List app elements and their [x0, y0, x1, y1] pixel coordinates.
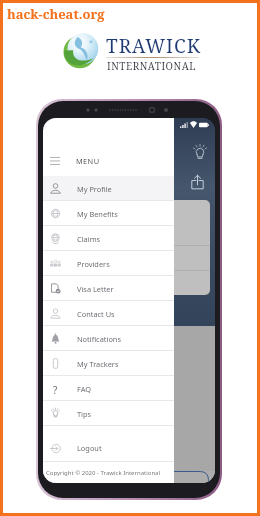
staticText: hack-cheat.org: [7, 5, 105, 23]
staticText: Logout: [77, 443, 102, 453]
button[interactable]: Notifications: [43, 326, 174, 351]
staticText: Claims: [77, 234, 101, 244]
button[interactable]: Contact Us: [43, 301, 174, 326]
button[interactable]: Share: [188, 173, 207, 191]
staticText: Copyright © 2020 - Trawick International: [46, 469, 161, 477]
button[interactable]: My Trackers: [43, 351, 174, 376]
staticText: INTERNATIONAL: [107, 59, 196, 73]
staticText: y KY: [45, 368, 61, 379]
staticText: Providers: [77, 259, 110, 269]
staticText: My Profile: [77, 184, 112, 194]
staticText: Notifications: [77, 334, 121, 344]
staticText: My Trackers: [77, 359, 119, 369]
button[interactable]: NGS: [43, 471, 215, 483]
staticText: .com: [45, 411, 64, 422]
button[interactable]: Logout: [43, 434, 174, 462]
staticText: Tips: [77, 409, 92, 419]
staticText: ?: [53, 383, 58, 394]
button[interactable]: My Profile: [43, 176, 174, 201]
staticText: MENU: [76, 156, 100, 166]
button[interactable]: Visa Letter: [43, 276, 174, 301]
staticText: Visa Letter: [77, 284, 114, 294]
button[interactable]: My Benefits: [43, 201, 174, 226]
button[interactable]: Tips: [43, 401, 174, 426]
button[interactable]: Claims: [43, 226, 174, 251]
staticText: gui+test1: [45, 402, 81, 413]
staticText: Contact Us: [77, 309, 115, 319]
button[interactable]: ?: [43, 376, 174, 401]
staticText: My Benefits: [77, 209, 118, 219]
staticText: TRAWICK: [106, 33, 202, 59]
button[interactable]: Tips: [191, 144, 209, 162]
button[interactable]: MENU: [43, 145, 174, 176]
staticText: FAQ: [77, 384, 92, 394]
button[interactable]: Providers: [43, 251, 174, 276]
staticText: NGS: [46, 474, 63, 483]
